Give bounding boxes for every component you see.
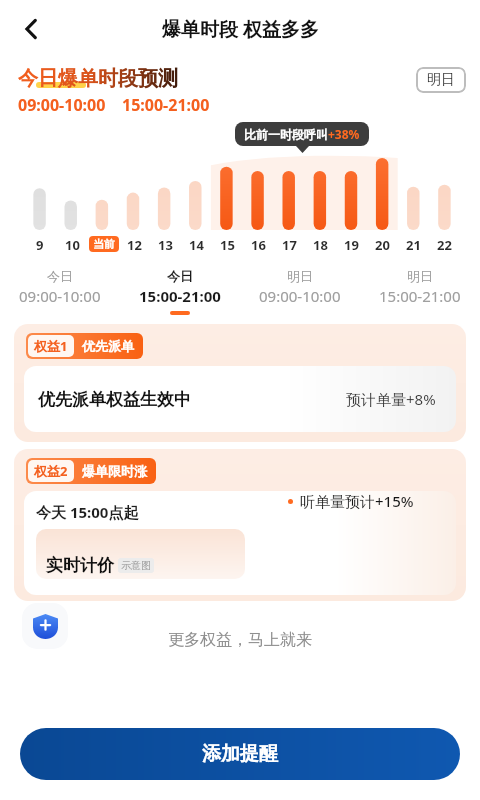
button[interactable]: 明日 bbox=[360, 260, 480, 316]
staticText: 添加提醒 bbox=[202, 742, 278, 766]
staticText: 12 bbox=[127, 236, 142, 254]
staticText: 09:00-10:00 bbox=[18, 94, 106, 116]
staticText: 实时计价 bbox=[46, 555, 114, 576]
staticText: 预计单量+8% bbox=[346, 389, 436, 409]
staticText: 爆单限时涨 bbox=[82, 463, 147, 479]
staticText: 16 bbox=[251, 236, 266, 254]
staticText: 今天 15:00点起 bbox=[36, 502, 139, 522]
staticText: 15 bbox=[220, 236, 235, 254]
staticText: 比前一时段呼叫 bbox=[244, 127, 328, 142]
staticText: 听单量预计+15% bbox=[300, 491, 414, 511]
staticText: 13 bbox=[158, 236, 173, 254]
staticText: 优先派单 bbox=[82, 338, 134, 354]
staticText: 明日 bbox=[427, 71, 455, 89]
staticText: 09:00-10:00 bbox=[259, 286, 341, 306]
button[interactable]: More benefits bbox=[22, 603, 68, 649]
button[interactable]: 明日 bbox=[416, 67, 466, 93]
button[interactable]: 添加提醒 bbox=[20, 728, 460, 780]
staticText: 15:00-21:00 bbox=[122, 94, 210, 116]
staticText: 今日 bbox=[47, 268, 73, 284]
staticText: 09:00-10:00 bbox=[19, 286, 101, 306]
staticText: 示意图 bbox=[121, 559, 151, 572]
staticText: 优先派单权益生效中 bbox=[38, 389, 191, 410]
button[interactable]: 明日 bbox=[240, 260, 360, 316]
staticText: 权益2 bbox=[34, 462, 68, 480]
staticText: 10 bbox=[65, 236, 80, 254]
staticText: 明日 bbox=[287, 268, 313, 284]
staticText: 当前 bbox=[93, 237, 115, 251]
staticText: 20 bbox=[375, 236, 390, 254]
staticText: 更多权益，马上就来 bbox=[168, 630, 312, 650]
staticText: 17 bbox=[282, 236, 297, 254]
staticText: 15:00-21:00 bbox=[139, 286, 221, 306]
staticText: 今日 bbox=[167, 268, 193, 284]
staticText: +38% bbox=[328, 126, 360, 142]
button[interactable]: 今日 bbox=[0, 260, 120, 316]
staticText: 权益1 bbox=[34, 337, 68, 355]
button[interactable]: 权益1 bbox=[14, 324, 466, 442]
staticText: 22 bbox=[437, 236, 452, 254]
staticText: 今日爆单时段预测 bbox=[18, 66, 178, 91]
button[interactable]: Back bbox=[8, 6, 54, 52]
button[interactable]: 今日 bbox=[120, 260, 240, 316]
staticText: 明日 bbox=[407, 268, 433, 284]
staticText: 15:00-21:00 bbox=[379, 286, 461, 306]
staticText: 爆单时段 权益多多 bbox=[162, 16, 319, 42]
staticText: 14 bbox=[189, 236, 204, 254]
staticText: 19 bbox=[344, 236, 359, 254]
staticText: 9 bbox=[36, 236, 44, 254]
staticText: 18 bbox=[313, 236, 328, 254]
button[interactable]: 权益2 bbox=[14, 449, 466, 601]
staticText: 21 bbox=[406, 236, 421, 254]
